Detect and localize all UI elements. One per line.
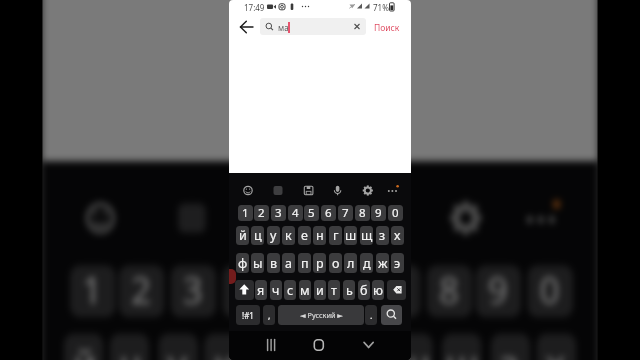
button[interactable]	[261, 336, 281, 354]
staticText: 5	[308, 205, 315, 221]
button[interactable]: у	[158, 333, 198, 360]
button[interactable]: х	[391, 226, 404, 245]
button[interactable]: ма	[260, 18, 366, 35]
button[interactable]: з	[376, 226, 389, 245]
button[interactable]: а	[282, 253, 295, 273]
button[interactable]: г	[347, 333, 387, 360]
button[interactable]: 4	[222, 265, 268, 317]
button[interactable]: ф	[236, 253, 249, 273]
button[interactable]	[235, 280, 254, 300]
staticText: з	[500, 337, 521, 360]
button[interactable]: й	[236, 226, 249, 245]
button[interactable]: и	[314, 280, 326, 300]
button[interactable]: ь	[343, 280, 355, 300]
staticText: ц	[254, 227, 262, 244]
button[interactable]: б	[358, 280, 370, 300]
button[interactable]: щ	[360, 226, 373, 245]
button[interactable]: 9	[476, 265, 521, 317]
button[interactable]: е	[253, 333, 292, 360]
button[interactable]: ,	[263, 305, 275, 325]
staticText: 3	[183, 265, 204, 317]
button[interactable]: й	[64, 333, 103, 360]
staticText: 1	[82, 265, 103, 317]
button[interactable]: х	[537, 333, 576, 360]
button[interactable]: р	[313, 253, 326, 273]
button[interactable]: о	[329, 253, 342, 273]
staticText: й	[73, 337, 97, 360]
button[interactable]: г	[329, 226, 342, 245]
button[interactable]: 5	[271, 265, 317, 317]
staticText: у	[167, 337, 189, 360]
button[interactable]: 4	[288, 205, 303, 221]
button[interactable]: 1	[238, 205, 253, 221]
button[interactable]: 3	[271, 205, 286, 221]
button[interactable]: ж	[376, 253, 389, 273]
button[interactable]: 6	[321, 205, 336, 221]
staticText: 2	[258, 205, 265, 221]
staticText: ц	[119, 337, 143, 360]
button[interactable]	[309, 336, 329, 354]
button[interactable]: Поиск	[374, 22, 400, 34]
staticText: ь	[346, 282, 353, 299]
button[interactable]: н	[299, 333, 338, 360]
button[interactable]: ц	[251, 226, 264, 245]
button[interactable]: к	[204, 333, 244, 360]
button[interactable]: ч	[270, 280, 282, 300]
button[interactable]: 8	[427, 265, 473, 317]
staticText: ф	[238, 255, 248, 272]
button[interactable]: !#1	[236, 305, 260, 325]
button[interactable]: н	[313, 226, 326, 245]
button[interactable]: 7	[375, 265, 421, 317]
button[interactable]: 7	[338, 205, 353, 221]
button[interactable]: с	[284, 280, 296, 300]
button[interactable]: 8	[355, 205, 370, 221]
staticText: 7	[387, 265, 408, 317]
staticText: 2	[131, 265, 152, 317]
button[interactable]: п	[298, 253, 311, 273]
staticText: л	[347, 255, 355, 272]
staticText: 17:49	[244, 2, 265, 13]
staticText: в	[270, 255, 278, 272]
button[interactable]: щ	[442, 333, 482, 360]
button[interactable]: ш	[344, 226, 357, 245]
button[interactable]: ш	[393, 333, 433, 360]
staticText: е	[301, 227, 308, 244]
button[interactable]: 2	[254, 205, 269, 221]
button[interactable]: 1	[70, 265, 116, 317]
staticText: р	[316, 255, 324, 272]
button[interactable]	[237, 18, 255, 36]
button[interactable]	[359, 336, 379, 354]
button[interactable]: э	[391, 253, 404, 273]
button[interactable]: л	[344, 253, 357, 273]
button[interactable]: 3	[171, 265, 216, 317]
button[interactable]: ы	[251, 253, 264, 273]
staticText: б	[360, 282, 368, 299]
button[interactable]: к	[282, 226, 295, 245]
button[interactable]: я	[255, 280, 267, 300]
button[interactable]: е	[298, 226, 311, 245]
button[interactable]: ю	[372, 280, 384, 300]
button[interactable]: 2	[119, 265, 164, 317]
button[interactable]: 0	[388, 205, 403, 221]
button[interactable]: в	[267, 253, 280, 273]
button[interactable]: 0	[527, 265, 573, 317]
button[interactable]: з	[491, 333, 530, 360]
button[interactable]	[387, 280, 406, 300]
staticText: е	[262, 337, 283, 360]
button[interactable]: т	[328, 280, 340, 300]
button[interactable]: д	[360, 253, 373, 273]
button[interactable]: 9	[371, 205, 386, 221]
staticText: 8	[359, 205, 366, 221]
staticText: к	[285, 227, 292, 244]
staticText: 6	[335, 265, 357, 317]
staticText: 5	[283, 265, 305, 317]
button[interactable]: 5	[304, 205, 319, 221]
button[interactable]: 6	[323, 265, 369, 317]
button[interactable]: .	[365, 305, 377, 325]
button[interactable]: ◄ Русский ►	[278, 305, 364, 325]
button[interactable]	[381, 305, 402, 325]
button[interactable]: ц	[110, 333, 149, 360]
button[interactable]: у	[267, 226, 280, 245]
button[interactable]: м	[299, 280, 311, 300]
staticText: й	[239, 227, 247, 244]
